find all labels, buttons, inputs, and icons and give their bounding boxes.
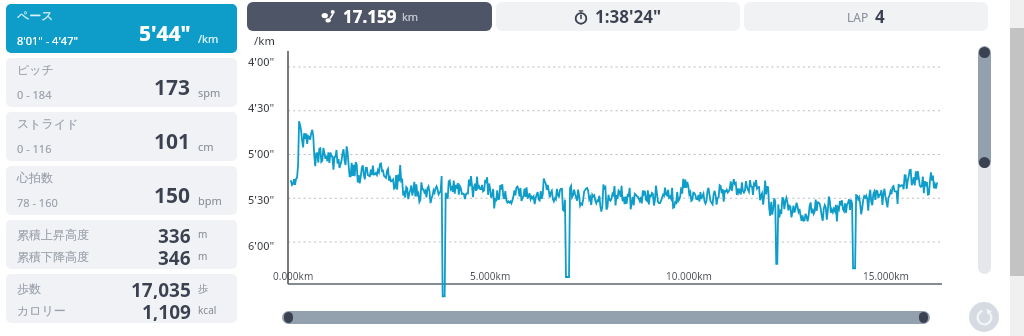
staticText: m [198, 249, 208, 263]
button[interactable]: ペース [6, 4, 237, 53]
staticText: 15.000km [863, 269, 909, 283]
button[interactable]: Distance range [282, 311, 930, 324]
staticText: cm [198, 139, 214, 154]
staticText: カロリー [17, 303, 66, 318]
staticText: 17.159 [343, 5, 397, 28]
staticText: 累積下降高度 [17, 249, 89, 264]
staticText: LAP [847, 9, 869, 25]
staticText: 5.000km [470, 269, 511, 283]
staticText: 4 [875, 5, 885, 28]
button[interactable]: 心拍数 [6, 166, 237, 215]
staticText: 1:38'24" [595, 5, 662, 28]
staticText: kcal [198, 303, 217, 317]
staticText: ペース [17, 8, 54, 23]
staticText: km [402, 9, 419, 24]
staticText: 1,109 [142, 299, 191, 321]
staticText: 5'44" [139, 19, 191, 48]
staticText: 歩 [198, 282, 208, 295]
staticText: 6'00" [248, 238, 275, 253]
staticText: 346 [158, 245, 191, 267]
staticText: 8'01" - 4'47" [17, 33, 78, 48]
staticText: 78 - 160 [17, 195, 58, 210]
staticText: /km [198, 31, 219, 46]
staticText: 101 [154, 127, 191, 156]
button[interactable]: ピッチ [6, 58, 237, 107]
staticText: 173 [154, 73, 191, 102]
staticText: 累積上昇高度 [17, 227, 89, 242]
button[interactable]: 歩数 [6, 274, 237, 323]
staticText: ピッチ [17, 62, 54, 77]
staticText: ストライド [17, 116, 79, 131]
button[interactable]: Pace range [978, 46, 991, 274]
staticText: m [198, 227, 208, 241]
staticText: 歩数 [17, 281, 41, 296]
button[interactable]: 累積上昇高度 [6, 220, 237, 269]
staticText: /km [254, 33, 275, 48]
button[interactable]: LAP [744, 2, 988, 31]
staticText: 4'00" [248, 54, 275, 69]
staticText: 4'30" [248, 100, 275, 115]
staticText: spm [198, 85, 221, 100]
button[interactable]: 17.159 [247, 2, 492, 31]
staticText: 0 - 116 [17, 141, 52, 156]
button[interactable]: Reset zoom [969, 302, 999, 332]
button[interactable]: 1:38'24" [496, 2, 740, 31]
staticText: 0 - 184 [17, 87, 52, 102]
staticText: 5'00" [248, 146, 275, 161]
staticText: bpm [198, 193, 222, 208]
staticText: 心拍数 [17, 170, 53, 185]
staticText: 5'30" [248, 192, 275, 207]
staticText: 336 [158, 223, 191, 245]
staticText: 0.000km [273, 269, 314, 283]
staticText: 150 [154, 181, 191, 210]
staticText: 17,035 [131, 277, 191, 299]
button[interactable]: ストライド [6, 112, 237, 161]
staticText: 10.000km [666, 269, 712, 283]
